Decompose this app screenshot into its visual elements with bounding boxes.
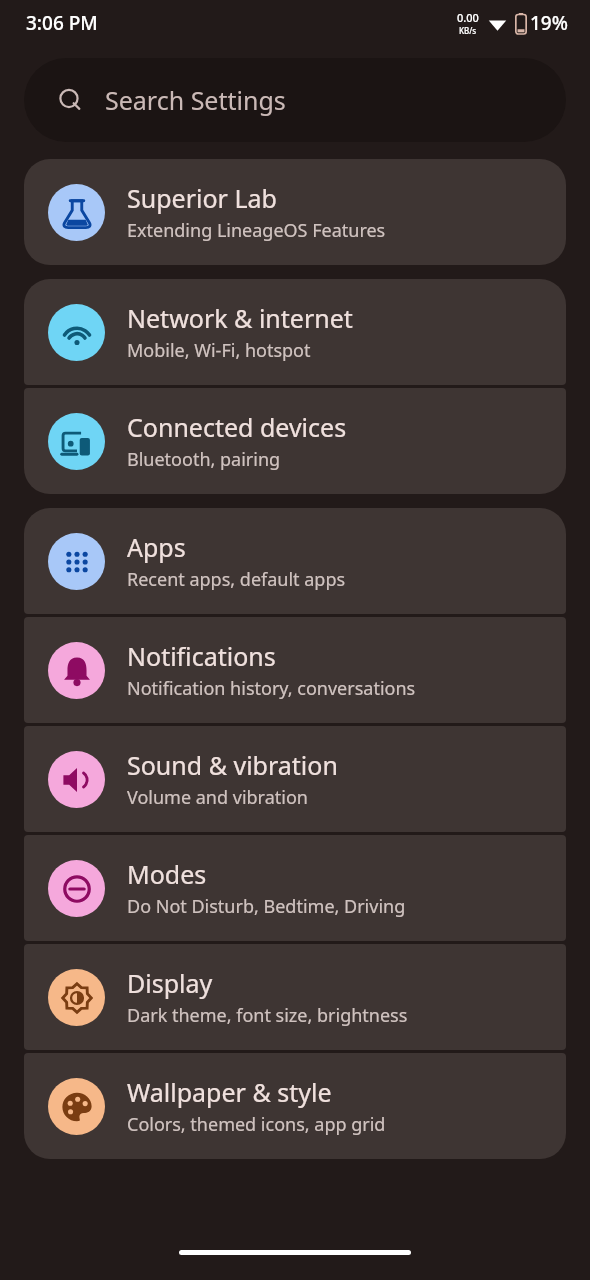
staticText: 3:06 PM [26,10,98,36]
button[interactable]: Display [24,944,566,1050]
button[interactable]: Apps [24,508,566,614]
staticText: Recent apps, default apps [127,567,346,592]
staticText: Wallpaper & style [127,1075,332,1109]
other: Connected devices [60,425,94,459]
other: Notifications [60,654,94,688]
staticText: Apps [127,530,186,564]
staticText: Display [127,966,213,1000]
staticText: Notification history, conversations [127,676,416,701]
staticText: Volume and vibration [127,785,308,810]
other: Wallpaper and style [60,1090,94,1124]
staticText: Dark theme, font size, brightness [127,1003,408,1028]
staticText: Connected devices [127,410,347,444]
button[interactable]: Modes [24,835,566,941]
button[interactable]: Wallpaper and style [24,1053,566,1159]
other: Sound and vibration [60,763,94,797]
button[interactable]: Superior Lab [24,159,566,265]
button[interactable]: Notifications [24,617,566,723]
staticText: Colors, themed icons, app grid [127,1112,386,1137]
staticText: Extending LineageOS Features [127,218,386,243]
button[interactable]: Network and internet [24,279,566,385]
staticText: 19% [530,10,568,36]
staticText: Notifications [127,639,276,673]
staticText: Superior Lab [127,181,277,215]
staticText: Bluetooth, pairing [127,447,281,472]
other: Modes [60,872,94,906]
staticText: Search Settings [105,83,286,117]
staticText: Sound & vibration [127,748,338,782]
staticText: 0.00 [457,10,479,25]
staticText: Network & internet [127,301,353,335]
button[interactable]: Sound and vibration [24,726,566,832]
staticText: Mobile, Wi-Fi, hotspot [127,338,311,363]
staticText: KB/s [459,25,477,36]
other: Superior Lab [60,196,94,230]
staticText: Do Not Disturb, Bedtime, Driving [127,894,406,919]
other: Display [60,981,94,1015]
staticText: Modes [127,857,207,891]
button[interactable]: Connected devices [24,388,566,494]
button[interactable]: Search Settings [24,58,566,142]
other: Network and internet [60,316,94,350]
other: Apps [60,545,94,579]
